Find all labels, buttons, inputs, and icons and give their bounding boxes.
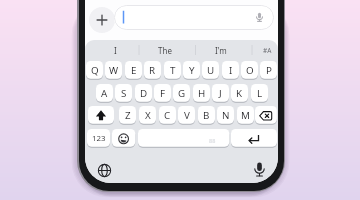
staticText: X — [145, 109, 151, 122]
staticText: J — [219, 87, 222, 100]
button[interactable]: R — [144, 61, 161, 80]
staticText: A — [101, 87, 108, 100]
staticText: 123 — [92, 133, 106, 144]
staticText: B — [203, 109, 210, 122]
button[interactable] — [88, 106, 114, 125]
button[interactable]: W — [105, 61, 122, 80]
button[interactable]: G — [173, 84, 190, 103]
staticText: H — [198, 87, 206, 100]
staticText: R — [149, 64, 156, 77]
button[interactable] — [250, 159, 269, 180]
staticText: P — [266, 64, 272, 77]
button[interactable]: I'm — [199, 40, 243, 60]
button[interactable]: 123 — [87, 129, 110, 148]
staticText: N — [222, 109, 230, 122]
staticText: K — [236, 87, 243, 100]
button[interactable]: Z — [119, 106, 136, 125]
button[interactable]: T — [164, 61, 181, 80]
button[interactable] — [95, 161, 114, 180]
button[interactable]: I — [93, 40, 137, 60]
button[interactable]: N — [217, 106, 234, 125]
staticText: M — [241, 109, 250, 122]
button[interactable]: L — [251, 84, 268, 103]
staticText: V — [184, 109, 190, 122]
button[interactable] — [114, 5, 274, 30]
button[interactable] — [89, 7, 115, 33]
staticText: I — [229, 64, 233, 77]
staticText: T — [170, 64, 176, 77]
staticText: 88 — [209, 137, 216, 144]
staticText: L — [257, 87, 263, 100]
staticText: U — [207, 64, 215, 77]
button[interactable]: E — [125, 61, 142, 80]
button[interactable]: V — [178, 106, 195, 125]
button[interactable]: U — [202, 61, 219, 80]
button[interactable]: D — [135, 84, 152, 103]
button[interactable] — [255, 106, 277, 125]
button[interactable]: S — [115, 84, 132, 103]
button[interactable]: O — [241, 61, 258, 80]
staticText: #A — [263, 46, 272, 55]
button[interactable] — [112, 129, 135, 148]
staticText: F — [160, 87, 166, 100]
button[interactable]: B — [198, 106, 215, 125]
staticText: Y — [189, 64, 195, 77]
button[interactable] — [231, 129, 277, 148]
button[interactable]: Y — [183, 61, 200, 80]
button[interactable]: J — [212, 84, 229, 103]
button[interactable]: M — [237, 106, 254, 125]
staticText: I'm — [215, 45, 227, 56]
staticText: The — [158, 45, 172, 56]
staticText: Q — [91, 64, 99, 77]
button[interactable] — [138, 129, 229, 148]
button[interactable]: K — [231, 84, 248, 103]
staticText: C — [164, 109, 171, 122]
staticText: Z — [125, 109, 131, 122]
staticText: G — [178, 87, 186, 100]
button[interactable]: A — [96, 84, 113, 103]
staticText: O — [246, 64, 254, 77]
button[interactable]: Q — [86, 61, 103, 80]
button[interactable]: I — [222, 61, 239, 80]
button[interactable]: F — [154, 84, 171, 103]
button[interactable]: P — [260, 61, 277, 80]
staticText: W — [109, 64, 119, 77]
staticText: I — [114, 45, 117, 56]
button[interactable]: #A — [257, 40, 278, 60]
staticText: S — [121, 87, 127, 100]
staticText: E — [131, 64, 137, 77]
staticText: D — [140, 87, 148, 100]
button[interactable]: The — [143, 40, 187, 60]
button[interactable]: C — [159, 106, 176, 125]
button[interactable]: X — [139, 106, 156, 125]
button[interactable]: H — [193, 84, 210, 103]
